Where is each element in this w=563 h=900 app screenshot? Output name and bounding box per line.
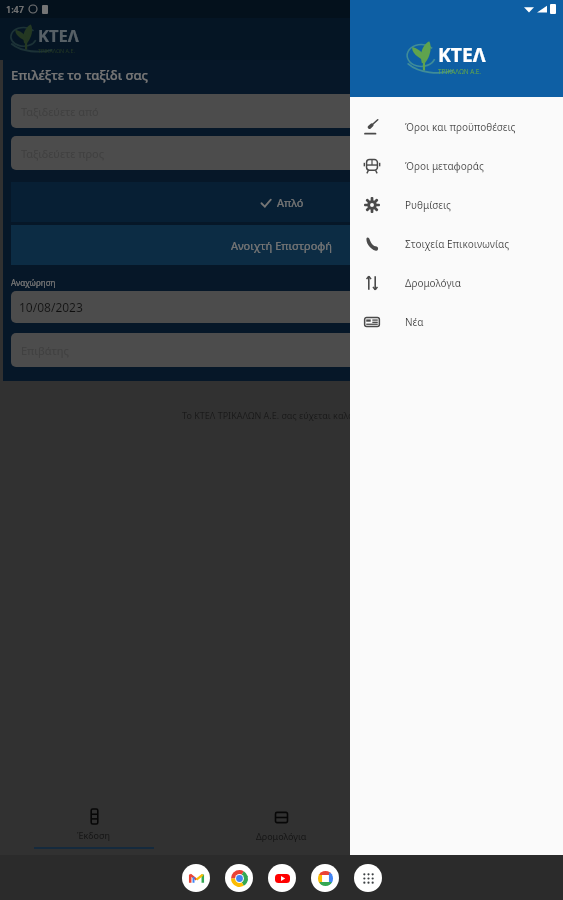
staticText: ΚΤΕΛ: [438, 41, 486, 67]
button[interactable]: All apps: [354, 864, 382, 892]
button[interactable]: Απλό: [11, 182, 552, 222]
button[interactable]: Όροι και προϋποθέσεις: [350, 107, 563, 146]
button[interactable]: Δρομολόγια: [187, 803, 375, 855]
button[interactable]: Ταξιδεύετε από: [11, 94, 552, 128]
staticText: Αναχώρηση: [11, 277, 56, 288]
staticText: Νέα: [405, 315, 424, 329]
button[interactable]: 10/08/2023: [11, 291, 389, 323]
staticText: Ταξιδεύετε προς: [21, 146, 105, 161]
staticText: ΤΡΙΚΑΛΩΝ Α.Ε.: [438, 67, 482, 76]
button[interactable]: Επιλέξτε: [397, 291, 552, 323]
button[interactable]: Δρομολόγια: [350, 263, 563, 302]
button[interactable]: Chrome: [225, 864, 253, 892]
staticText: Ταξιδεύετε από: [21, 104, 99, 119]
staticText: Το ΚΤΕΛ ΤΡΙΚΑΛΩΝ Α.Ε. σας εύχεται καλό τ…: [16, 409, 547, 421]
staticText: Στοιχεία Επικοινωνίας: [405, 237, 510, 251]
button[interactable]: Gmail: [182, 864, 210, 892]
button[interactable]: Έκδοση: [0, 803, 187, 855]
staticText: Απλό: [277, 195, 304, 210]
button[interactable]: Όροι μεταφοράς: [350, 146, 563, 185]
button[interactable]: Επιβάτης: [11, 333, 552, 367]
staticText: Δρομολόγια: [256, 830, 307, 842]
staticText: Επιβάτης: [21, 343, 69, 358]
staticText: Ρυθμίσεις: [405, 198, 451, 212]
button[interactable]: Νέα: [350, 302, 563, 341]
button[interactable]: YouTube: [268, 864, 296, 892]
button[interactable]: Ανοιχτή Επιστροφή: [11, 225, 552, 265]
staticText: Επιστροφή: [397, 277, 439, 288]
staticText: ΚΤΕΛ: [38, 24, 79, 47]
button[interactable]: Ταξιδεύετε προς: [11, 136, 552, 170]
staticText: Όροι και προϋποθέσεις: [405, 120, 516, 134]
staticText: 1:47: [6, 3, 24, 15]
button[interactable]: Ρυθμίσεις: [350, 185, 563, 224]
staticText: ΤΡΙΚΑΛΩΝ Α.Ε.: [38, 47, 75, 54]
staticText: Ανοιχτή Επιστροφή: [231, 238, 332, 253]
staticText: Δρομολόγια: [405, 276, 461, 290]
staticText: Έκδοση: [77, 829, 111, 841]
staticText: Σχεδιασμός & Ανάπτυξη:: [358, 875, 453, 886]
staticText: 10/08/2023: [19, 299, 83, 315]
staticText: Όροι μεταφοράς: [405, 159, 484, 173]
staticText: Επιλέξτε το ταξίδι σας: [11, 66, 149, 84]
button[interactable]: Photos: [311, 864, 339, 892]
button[interactable]: Στοιχεία Επικοινωνίας: [350, 224, 563, 263]
